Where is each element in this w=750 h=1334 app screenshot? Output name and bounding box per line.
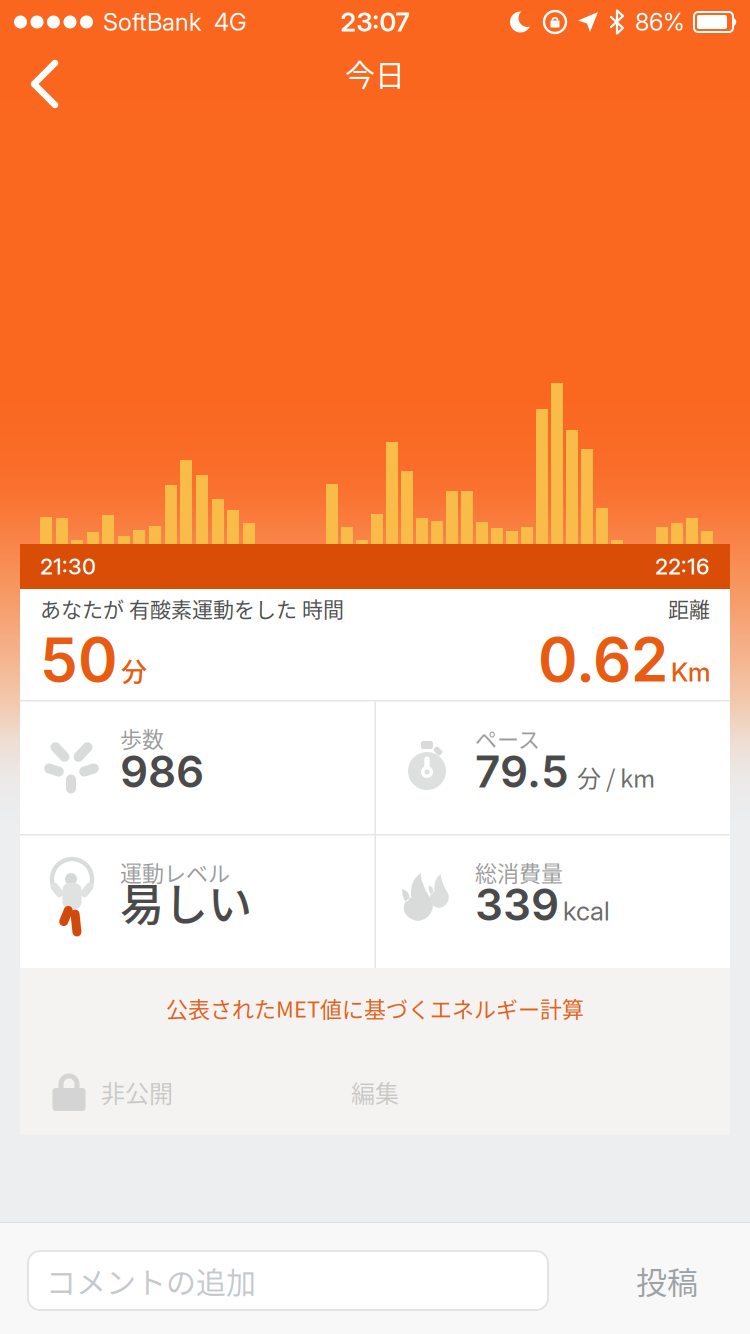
staticText: 986	[120, 745, 204, 798]
button[interactable]: Back	[0, 48, 59, 106]
staticText: 0.62	[538, 623, 668, 696]
staticText: 運動レベル	[120, 856, 230, 888]
staticText: 公表されたMET値に基づくエネルギー計算	[166, 992, 584, 1024]
staticText: 総消費量	[475, 856, 563, 888]
staticText: 50	[40, 623, 118, 696]
staticText: 22:16	[655, 553, 710, 580]
staticText: 339	[475, 878, 559, 931]
staticText: 非公開	[101, 1075, 173, 1109]
staticText: 今日	[345, 51, 405, 95]
button[interactable]: 編集	[351, 1075, 399, 1109]
staticText: 編集	[351, 1075, 399, 1109]
staticText: 投稿	[636, 1258, 698, 1303]
staticText: 21:30	[40, 553, 96, 580]
staticText: SoftBank	[103, 7, 202, 36]
button[interactable]: 投稿	[636, 1258, 750, 1303]
button[interactable]: 非公開	[20, 1073, 173, 1111]
staticText: 歩数	[120, 722, 164, 754]
staticText: kcal	[563, 895, 610, 927]
staticText: 23:07	[340, 6, 409, 38]
staticText: あなたが 有酸素運動をした 時間	[40, 593, 344, 623]
staticText: 分	[121, 651, 147, 689]
staticText: 79.5	[475, 745, 569, 798]
staticText: 易しい	[120, 870, 252, 934]
staticText: 86%	[635, 7, 685, 36]
staticText: Km	[671, 656, 710, 688]
staticText: コメントの追加	[46, 1259, 256, 1302]
staticText: 4G	[214, 7, 247, 36]
staticText: 分 / km	[577, 760, 655, 794]
staticText: ペース	[475, 722, 540, 754]
staticText: 距離	[668, 593, 710, 623]
button[interactable]: コメントの追加	[28, 1251, 548, 1310]
